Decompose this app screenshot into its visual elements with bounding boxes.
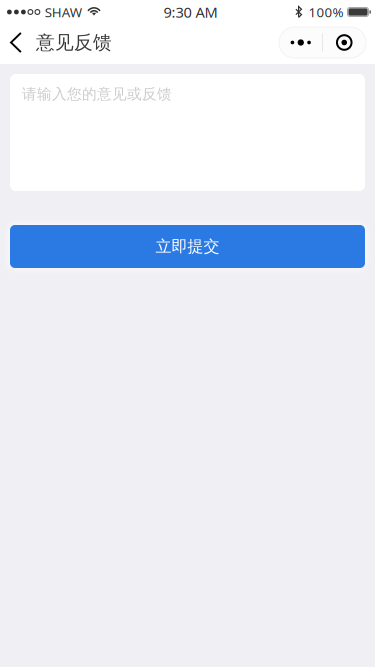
button[interactable]: 请输入您的意见或反馈 bbox=[10, 74, 365, 191]
button[interactable]: Back bbox=[0, 22, 26, 62]
staticText: 9:30 AM bbox=[163, 2, 217, 22]
staticText: 请输入您的意见或反馈 bbox=[22, 85, 172, 103]
staticText: 100% bbox=[308, 3, 343, 21]
button[interactable]: 立即提交 bbox=[10, 225, 365, 268]
staticText: 立即提交 bbox=[155, 237, 219, 256]
staticText: SHAW bbox=[45, 3, 82, 21]
staticText: 意见反馈 bbox=[36, 31, 112, 54]
button[interactable]: More options and close bbox=[279, 27, 366, 58]
